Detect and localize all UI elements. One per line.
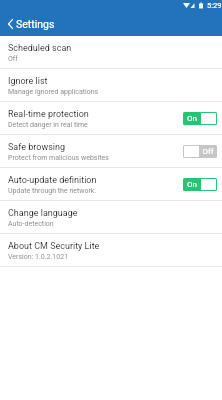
staticText: Scheduled scan: [8, 43, 72, 54]
staticText: Manage ignored applications: [8, 88, 99, 96]
staticText: On: [183, 114, 201, 123]
button[interactable]: Auto-update definition: [0, 168, 222, 201]
button[interactable]: On: [183, 112, 217, 125]
staticText: 5:29: [207, 1, 222, 10]
button[interactable]: Off: [183, 145, 217, 158]
staticText: Ignore list: [8, 76, 48, 87]
button[interactable]: About CM Security Lite: [0, 234, 222, 267]
staticText: Safe browsing: [8, 142, 66, 153]
staticText: On: [183, 180, 201, 189]
button[interactable]: Ignore list: [0, 69, 222, 102]
button[interactable]: Real-time protection: [0, 102, 222, 135]
button[interactable]: Scheduled scan: [0, 36, 222, 69]
staticText: Off: [199, 147, 217, 156]
staticText: Update through the network.: [8, 187, 97, 195]
staticText: Real-time protection: [8, 109, 89, 120]
staticText: Protect from malicious websites: [8, 154, 109, 162]
staticText: Auto-update definition: [8, 175, 97, 186]
staticText: Off: [8, 55, 18, 63]
staticText: Settings: [16, 18, 55, 30]
staticText: Detect danger in real time: [8, 121, 88, 129]
button[interactable]: Safe browsing: [0, 135, 222, 168]
button[interactable]: Change language: [0, 201, 222, 234]
staticText: Change language: [8, 208, 78, 219]
staticText: Auto-detection: [8, 220, 54, 228]
button[interactable]: On: [183, 178, 217, 191]
staticText: About CM Security Lite: [8, 241, 100, 252]
staticText: Version: 1.0.2.1021: [8, 253, 69, 261]
button[interactable]: Back to Settings: [2, 12, 55, 36]
